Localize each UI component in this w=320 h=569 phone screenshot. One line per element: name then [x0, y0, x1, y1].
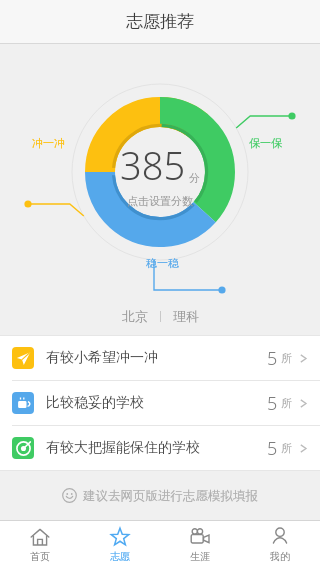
staticText: 有较小希望冲一冲: [46, 349, 158, 367]
staticText: 北京: [122, 308, 148, 324]
button[interactable]: 比较稳妥的学校: [0, 381, 320, 425]
staticText: 志愿推荐: [126, 11, 194, 32]
staticText: 所: [281, 441, 292, 455]
staticText: 生涯: [190, 550, 210, 563]
staticText: 我的: [270, 550, 290, 563]
staticText: 稳一稳: [146, 256, 179, 270]
button[interactable]: 我的: [240, 521, 320, 569]
staticText: 理科: [173, 308, 199, 324]
button[interactable]: 志愿: [80, 521, 160, 569]
staticText: 冲一冲: [32, 136, 65, 150]
staticText: 志愿: [110, 550, 130, 563]
staticText: 有较大把握能保住的学校: [46, 439, 200, 457]
staticText: 首页: [30, 550, 50, 563]
staticText: 5: [267, 436, 278, 461]
staticText: 5: [267, 391, 278, 416]
staticText: 所: [281, 396, 292, 410]
button[interactable]: 建议去网页版进行志愿模拟填报: [0, 471, 320, 520]
staticText: 5: [267, 346, 278, 371]
button[interactable]: 首页: [0, 521, 80, 569]
staticText: 所: [281, 351, 292, 365]
button[interactable]: [0, 44, 320, 297]
staticText: 分: [189, 171, 200, 185]
staticText: 建议去网页版进行志愿模拟填报: [83, 488, 258, 504]
button[interactable]: 生涯: [160, 521, 240, 569]
staticText: 保一保: [249, 136, 282, 150]
staticText: 385: [120, 139, 186, 191]
button[interactable]: 有较小希望冲一冲: [0, 336, 320, 380]
staticText: 点击设置分数: [127, 194, 193, 208]
staticText: 比较稳妥的学校: [46, 394, 144, 412]
button[interactable]: 有较大把握能保住的学校: [0, 426, 320, 470]
